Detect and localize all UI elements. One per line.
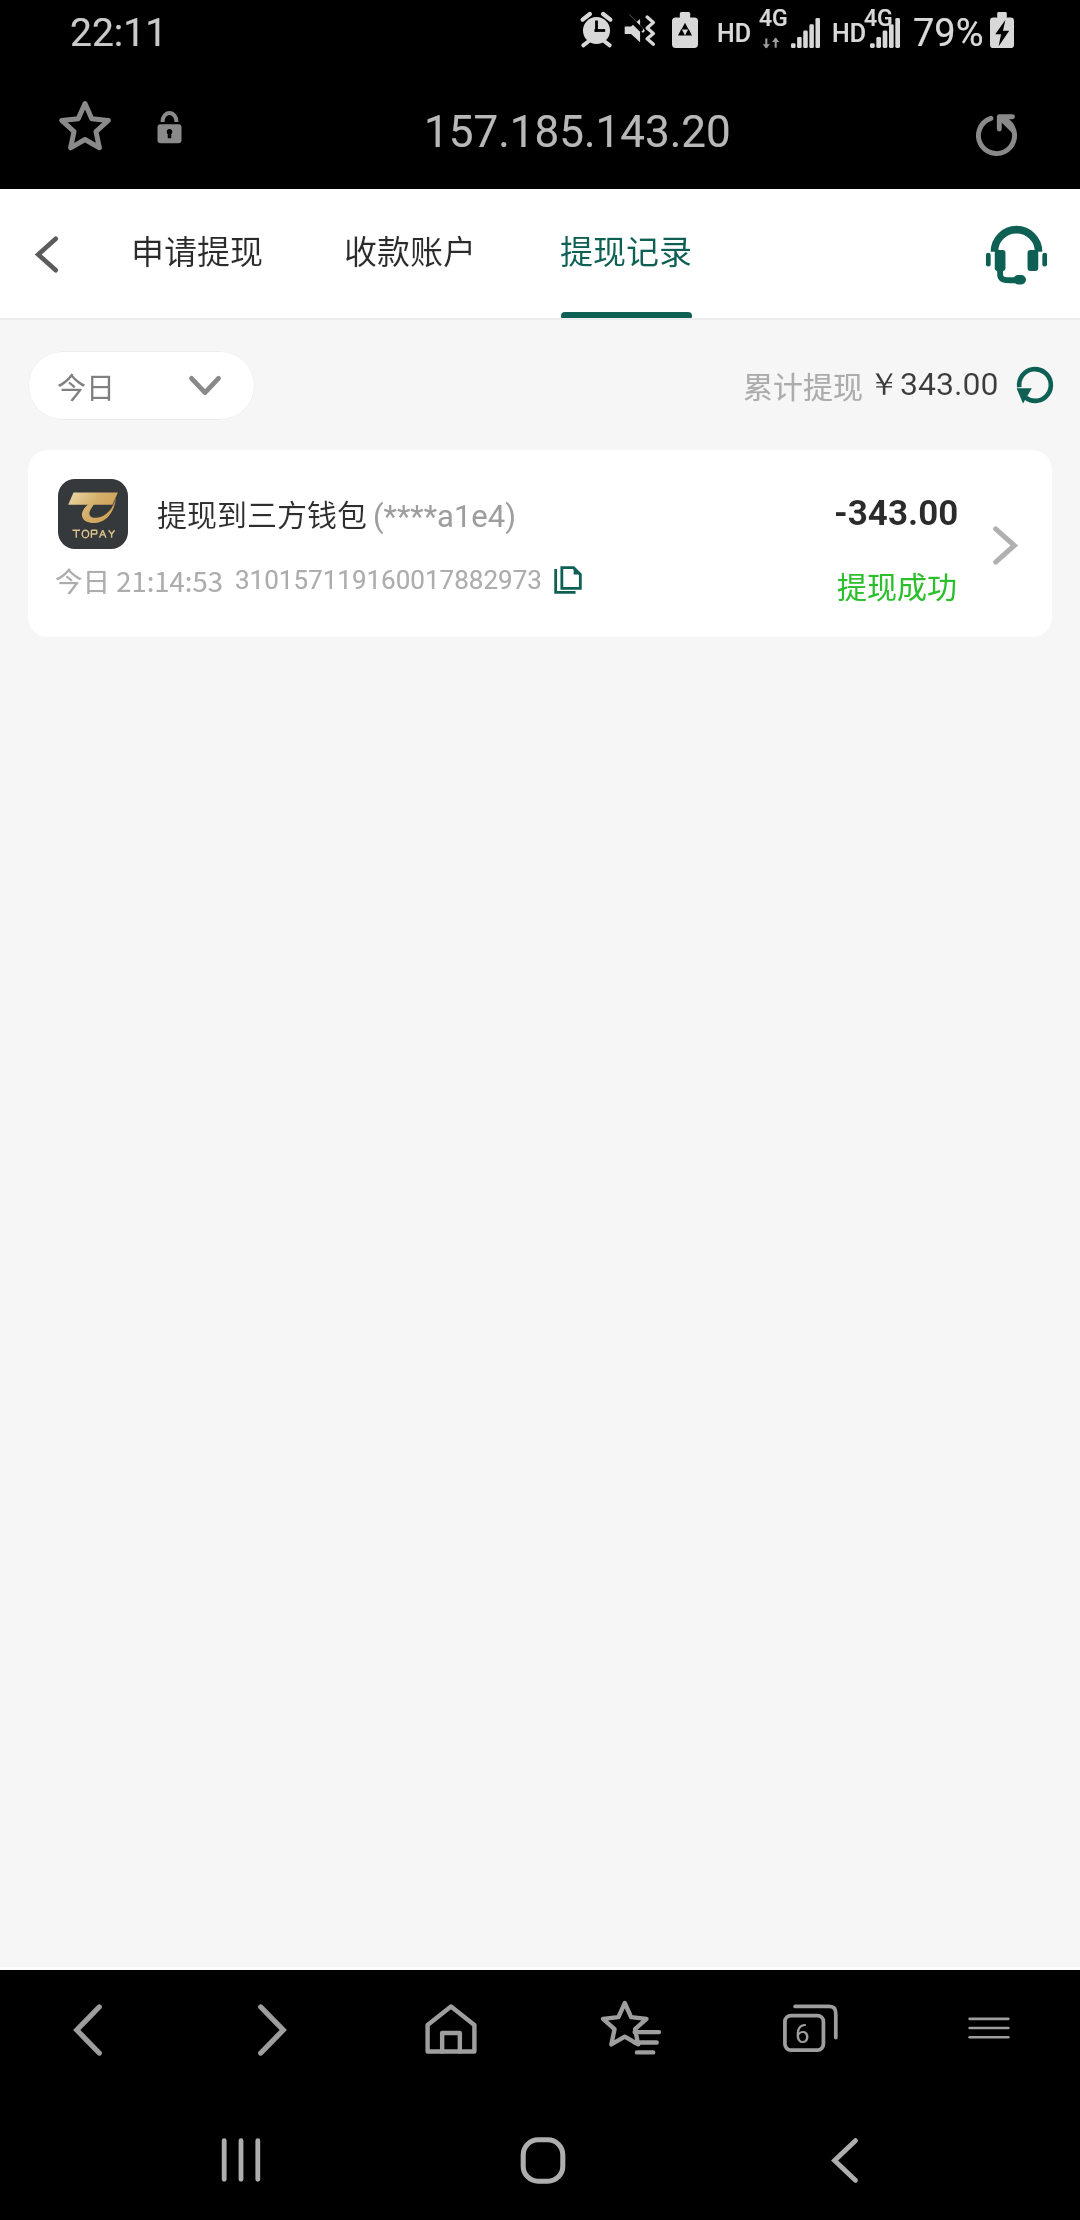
button[interactable]: Home bbox=[401, 1982, 501, 2076]
button[interactable]: Tabs, 6 open bbox=[759, 1982, 862, 2074]
button[interactable]: 今日 bbox=[28, 351, 255, 420]
button[interactable]: Bookmarks bbox=[577, 1981, 683, 2077]
button[interactable]: Menu bbox=[942, 1985, 1036, 2071]
staticText: 提现记录 bbox=[560, 226, 692, 274]
staticText: 22:11 bbox=[70, 10, 168, 56]
staticText: 79% bbox=[913, 11, 984, 56]
staticText: 今日 21:14:53 bbox=[55, 560, 224, 600]
staticText: HD bbox=[717, 19, 752, 48]
button[interactable]: Forward bbox=[234, 1983, 310, 2077]
staticText: (****a1e4) bbox=[373, 498, 516, 534]
button[interactable]: 收款账户 bbox=[340, 187, 480, 312]
button[interactable]: 提现到三方钱包 bbox=[28, 450, 1052, 637]
staticText: 提现成功 bbox=[837, 563, 957, 606]
staticText: 6 bbox=[795, 2019, 810, 2049]
button[interactable]: Reload bbox=[961, 100, 1031, 170]
button[interactable]: Recents bbox=[181, 2100, 301, 2220]
staticText: HD bbox=[832, 19, 867, 48]
staticText: 310157119160017882973 bbox=[235, 565, 542, 595]
staticText: 申请提现 bbox=[131, 226, 263, 274]
staticText: -343.00 bbox=[834, 493, 959, 534]
button[interactable]: Back bbox=[10, 222, 83, 286]
staticText: 提现到三方钱包 bbox=[157, 491, 367, 534]
staticText: 4G bbox=[864, 5, 893, 32]
staticText: 累计提现 bbox=[743, 363, 863, 406]
button[interactable]: 申请提现 bbox=[127, 187, 267, 312]
button[interactable]: Back bbox=[50, 1983, 126, 2077]
button[interactable]: Back bbox=[785, 2100, 905, 2220]
staticText: 4G bbox=[759, 5, 788, 32]
button[interactable]: Secure bbox=[145, 104, 193, 152]
staticText: 今日 bbox=[57, 365, 116, 407]
button[interactable]: Bookmark bbox=[49, 91, 121, 163]
staticText: 157.185.143.20 bbox=[424, 106, 731, 158]
button[interactable]: Home bbox=[483, 2100, 603, 2220]
button[interactable]: 提现记录 bbox=[556, 187, 696, 312]
staticText: 收款账户 bbox=[344, 226, 476, 274]
staticText: ￥343.00 bbox=[868, 364, 999, 404]
button[interactable]: Customer service bbox=[965, 208, 1068, 302]
button[interactable]: Refresh bbox=[1011, 361, 1059, 409]
button[interactable]: Copy bbox=[553, 565, 583, 595]
